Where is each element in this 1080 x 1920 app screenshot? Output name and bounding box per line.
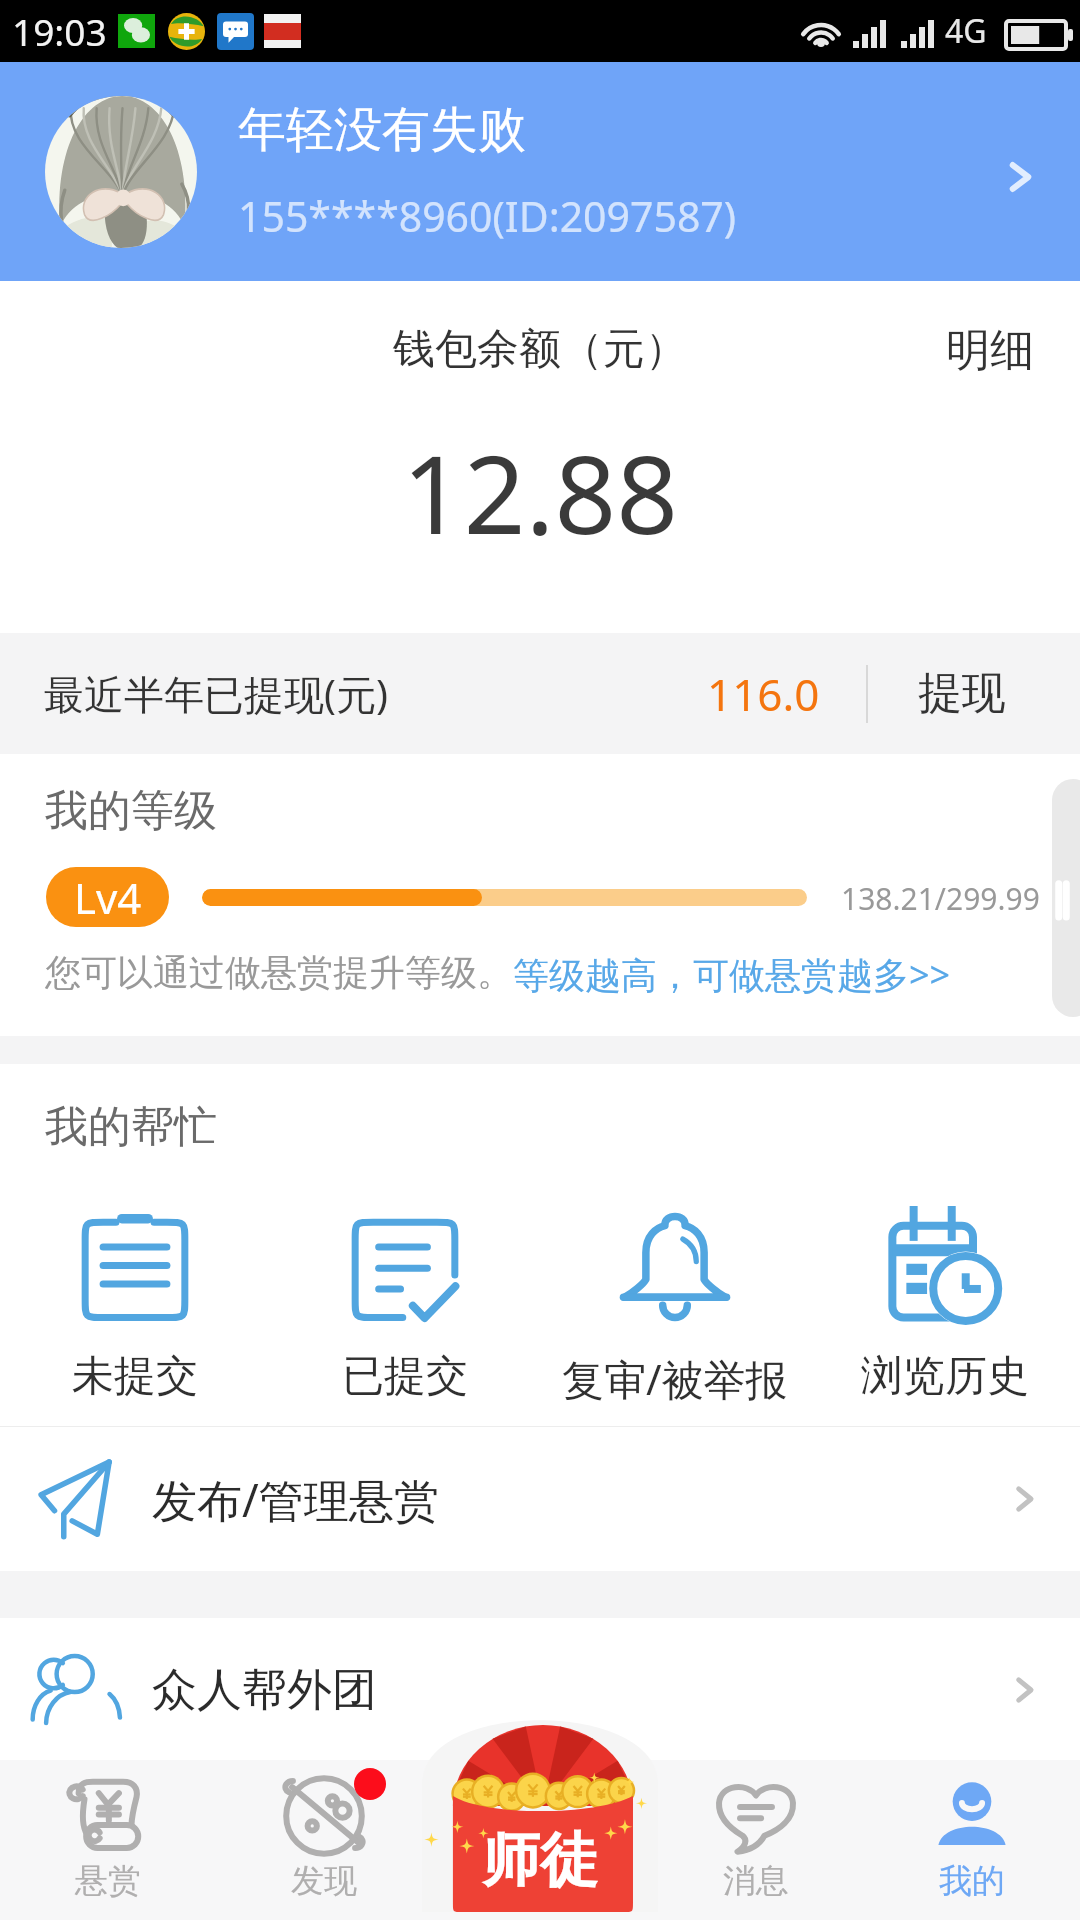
button[interactable]: 我的 [864,1760,1080,1920]
staticText: 发现 [291,1860,357,1902]
staticText: 我的等级 [45,784,217,838]
staticText: 悬赏 [75,1860,141,1902]
staticText: 众人帮外团 [152,1662,377,1719]
button[interactable]: 悬赏 [0,1760,216,1920]
staticText: 已提交 [342,1350,468,1403]
staticText: 最近半年已提现(元) [44,666,388,721]
staticText: 155****8960(ID:2097587) [238,188,737,244]
button[interactable]: 年轻没有失败 [0,62,1080,281]
button[interactable]: 发现 [216,1760,432,1920]
staticText: 138.21/299.99 [841,878,1040,919]
button[interactable]: 浏览历史 [810,1210,1080,1403]
staticText: 钱包余额（元） [393,323,687,376]
staticText: Lv4 [74,869,142,926]
button[interactable]: 明细 [938,317,1042,384]
button[interactable]: 发布/管理悬赏 [0,1427,1080,1571]
staticText: 浏览历史 [861,1350,1029,1403]
staticText: 消息 [723,1860,789,1902]
button[interactable]: Drag handle [1052,779,1080,1017]
button[interactable]: 等级越高，可做悬赏越多>> [513,950,951,999]
button[interactable]: 消息 [648,1760,864,1920]
button[interactable]: 已提交 [270,1210,540,1403]
button[interactable]: 复审/被举报 [540,1210,810,1407]
staticText: 4G [945,9,987,53]
button[interactable]: 众人帮外团 [0,1618,1080,1762]
staticText: 复审/被举报 [562,1350,788,1407]
button[interactable]: 未提交 [0,1210,270,1403]
staticText: 师徒 [482,1824,598,1897]
staticText: 等级越高，可做悬赏越多>> [513,950,951,999]
staticText: 提现 [918,666,1006,721]
staticText: 您可以通过做悬赏提升等级。 [45,950,513,995]
staticText: 明细 [946,323,1034,378]
button[interactable]: 提现 [918,666,1006,721]
button[interactable]: 师徒 [422,1699,658,1912]
staticText: 12.88 [402,419,679,566]
staticText: 我的 [939,1860,1005,1902]
staticText: 116.0 [707,664,820,724]
staticText: 19:03 [12,6,107,56]
staticText: 未提交 [72,1350,198,1403]
staticText: 我的帮忙 [45,1100,217,1154]
staticText: 发布/管理悬赏 [152,1469,439,1530]
staticText: 年轻没有失败 [238,100,526,160]
